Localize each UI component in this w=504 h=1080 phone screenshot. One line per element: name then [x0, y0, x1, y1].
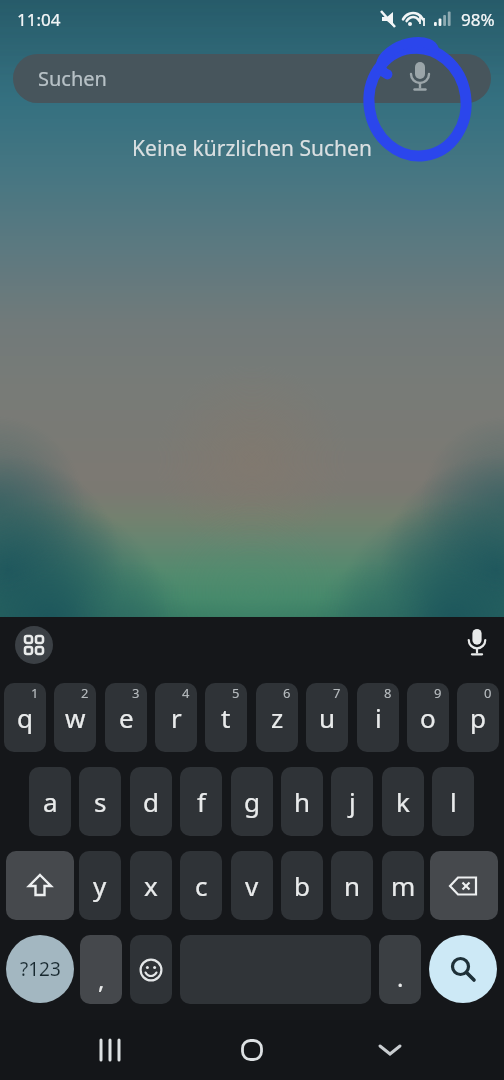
staticText: k: [396, 784, 410, 819]
staticText: c: [195, 868, 208, 903]
button[interactable]: Suchen: [13, 54, 491, 103]
button[interactable]: [398, 57, 442, 101]
button[interactable]: z: [256, 683, 298, 752]
staticText: t: [221, 700, 231, 735]
staticText: 1: [31, 684, 39, 702]
staticText: 6: [283, 684, 291, 702]
button[interactable]: r: [155, 683, 197, 752]
staticText: m: [391, 868, 416, 903]
button[interactable]: [6, 851, 74, 920]
button[interactable]: [87, 1026, 135, 1074]
button[interactable]: a: [29, 767, 71, 836]
staticText: h: [294, 784, 311, 819]
staticText: p: [470, 700, 486, 735]
button[interactable]: p: [457, 683, 499, 752]
staticText: e: [119, 700, 134, 735]
staticText: j: [349, 784, 356, 819]
staticText: .: [397, 961, 404, 994]
staticText: b: [294, 868, 310, 903]
staticText: l: [450, 784, 457, 819]
button[interactable]: l: [432, 767, 474, 836]
staticText: z: [271, 700, 284, 735]
staticText: ?123: [20, 956, 61, 982]
button[interactable]: ?123: [6, 935, 74, 1003]
button[interactable]: b: [281, 851, 323, 920]
button[interactable]: s: [79, 767, 121, 836]
staticText: o: [420, 700, 436, 735]
staticText: 5: [232, 684, 240, 702]
button[interactable]: t: [205, 683, 247, 752]
staticText: u: [319, 700, 336, 735]
button[interactable]: j: [331, 767, 373, 836]
staticText: s: [94, 784, 107, 819]
button[interactable]: u: [306, 683, 348, 752]
staticText: ,: [98, 963, 105, 996]
button[interactable]: d: [130, 767, 172, 836]
button[interactable]: [15, 626, 53, 664]
button[interactable]: [366, 1026, 414, 1074]
button[interactable]: .: [379, 935, 421, 1004]
button[interactable]: v: [231, 851, 273, 920]
staticText: 7: [333, 684, 341, 702]
staticText: v: [245, 868, 259, 903]
button[interactable]: [228, 1026, 276, 1074]
button[interactable]: k: [382, 767, 424, 836]
staticText: f: [197, 784, 206, 819]
button[interactable]: n: [331, 851, 373, 920]
button[interactable]: [458, 626, 496, 664]
button[interactable]: i: [357, 683, 399, 752]
button[interactable]: f: [180, 767, 222, 836]
staticText: w: [65, 700, 86, 735]
staticText: d: [143, 784, 159, 819]
button[interactable]: c: [180, 851, 222, 920]
button[interactable]: m: [382, 851, 424, 920]
button[interactable]: ,: [80, 935, 122, 1004]
button[interactable]: [429, 935, 497, 1003]
staticText: 11:04: [17, 8, 61, 31]
staticText: 0: [484, 684, 492, 702]
staticText: 98%: [461, 8, 495, 31]
staticText: a: [43, 784, 58, 819]
staticText: 3: [132, 684, 140, 702]
button[interactable]: y: [79, 851, 121, 920]
staticText: Keine kürzlichen Suchen: [0, 134, 504, 163]
button[interactable]: o: [407, 683, 449, 752]
staticText: q: [17, 700, 33, 735]
staticText: x: [144, 868, 158, 903]
staticText: i: [375, 700, 382, 735]
staticText: 4: [182, 684, 190, 702]
staticText: y: [93, 868, 107, 903]
staticText: 8: [384, 684, 392, 702]
button[interactable]: [430, 851, 498, 920]
button[interactable]: w: [54, 683, 96, 752]
staticText: Suchen: [38, 65, 107, 92]
button[interactable]: g: [231, 767, 273, 836]
staticText: r: [171, 700, 182, 735]
staticText: 9: [434, 684, 442, 702]
staticText: g: [244, 784, 260, 819]
staticText: n: [344, 868, 361, 903]
button[interactable]: [130, 935, 172, 1004]
button[interactable]: e: [105, 683, 147, 752]
staticText: 2: [81, 684, 89, 702]
button[interactable]: x: [130, 851, 172, 920]
button[interactable]: h: [281, 767, 323, 836]
button[interactable]: q: [4, 683, 46, 752]
